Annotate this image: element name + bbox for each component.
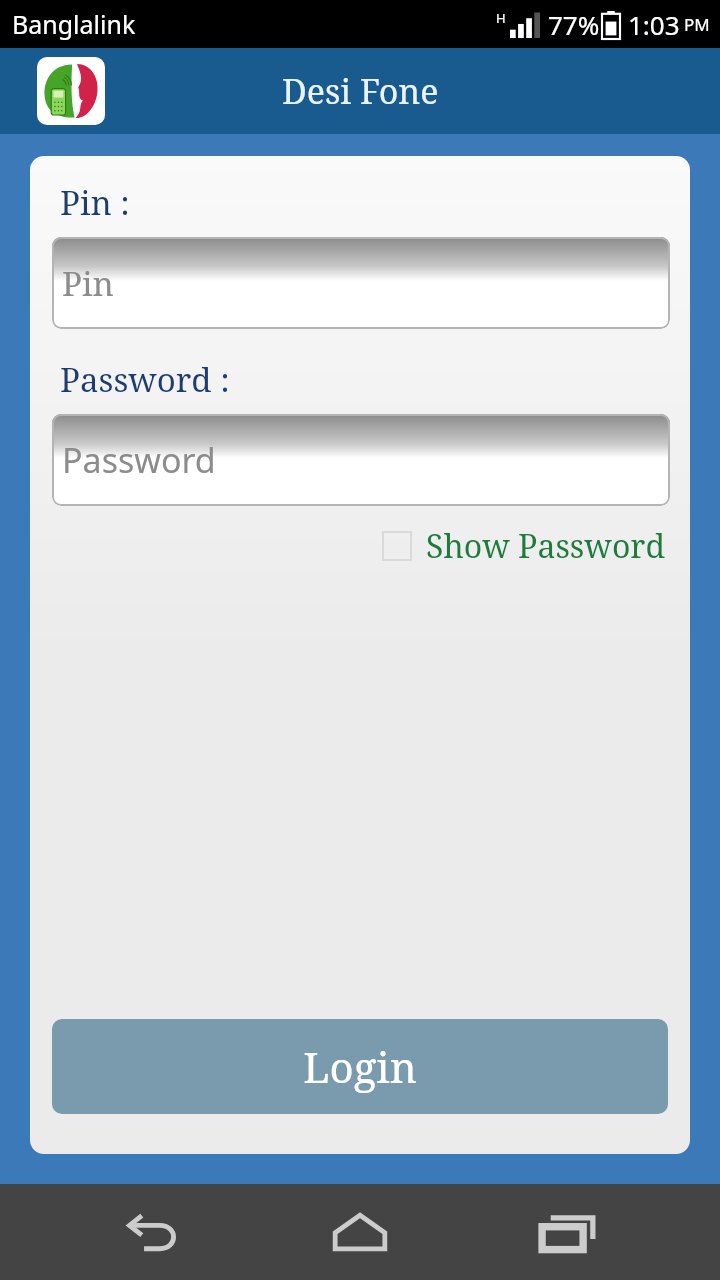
staticText: Password :: [60, 357, 230, 402]
button[interactable]: Show Password: [382, 524, 666, 568]
staticText: Login: [303, 1038, 417, 1095]
staticText: Show Password: [426, 524, 666, 568]
staticText: 77%: [548, 7, 600, 42]
staticText: Pin :: [60, 180, 130, 225]
staticText: Pin: [62, 261, 114, 306]
staticText: Desi Fone: [282, 68, 439, 114]
staticText: Banglalink: [12, 7, 136, 41]
staticText: 1:03: [628, 7, 680, 42]
staticText: Password: [62, 437, 216, 483]
staticText: H: [496, 9, 506, 27]
button[interactable]: Login: [52, 1019, 668, 1114]
button[interactable]: Pin: [52, 237, 670, 329]
button[interactable]: Desi Fone app icon: [37, 57, 105, 125]
staticText: PM: [684, 13, 710, 36]
button[interactable]: Home: [305, 1184, 415, 1280]
button[interactable]: Back: [98, 1184, 208, 1280]
button[interactable]: Password: [52, 414, 670, 506]
button[interactable]: Recent apps: [513, 1184, 623, 1280]
